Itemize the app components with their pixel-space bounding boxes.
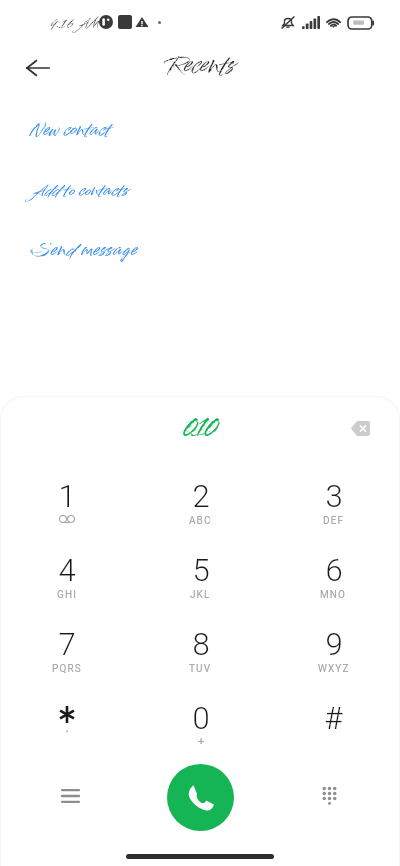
staticText: 8 xyxy=(192,626,210,662)
button[interactable]: Back xyxy=(18,48,58,88)
staticText: 9 xyxy=(325,626,343,662)
button[interactable]: Keypad xyxy=(307,774,351,818)
staticText: 3 xyxy=(325,478,343,514)
staticText: 4 xyxy=(58,552,76,588)
staticText: 6 xyxy=(325,552,343,588)
staticText: # xyxy=(324,700,343,736)
staticText: 1 xyxy=(58,478,76,514)
staticText: Recents xyxy=(166,49,235,85)
button[interactable]: 0 xyxy=(134,700,267,774)
button[interactable]: 1 xyxy=(0,478,134,552)
staticText: 2 xyxy=(192,478,210,514)
staticText: ABC xyxy=(189,515,212,527)
button[interactable]: Add to contacts xyxy=(0,172,400,210)
staticText: MNO xyxy=(320,589,347,601)
button[interactable]: 8 xyxy=(134,626,267,700)
button[interactable]: 2 xyxy=(134,478,267,552)
staticText: 7 xyxy=(58,626,76,662)
staticText: PQRS xyxy=(52,663,82,675)
staticText: DEF xyxy=(323,515,345,527)
staticText: ’ xyxy=(66,728,69,741)
button[interactable]: 5 xyxy=(134,552,267,626)
button[interactable]: New contact xyxy=(0,112,400,150)
button[interactable]: Call log xyxy=(48,774,92,818)
button[interactable]: Call xyxy=(167,764,234,831)
button[interactable]: 6 xyxy=(267,552,400,626)
staticText: 0 xyxy=(192,700,210,736)
staticText: New contact xyxy=(30,118,111,144)
staticText: + xyxy=(198,735,205,748)
staticText: GHI xyxy=(57,589,77,601)
button[interactable]: 3 xyxy=(267,478,400,552)
staticText: WXYZ xyxy=(318,663,350,675)
button[interactable]: 7 xyxy=(0,626,134,700)
button[interactable]: 9 xyxy=(267,626,400,700)
staticText: JKL xyxy=(190,589,211,601)
button[interactable]: 4 xyxy=(0,552,134,626)
staticText: Add to contacts xyxy=(30,179,128,203)
staticText: Send message xyxy=(30,237,138,265)
staticText: 5 xyxy=(192,552,210,588)
button[interactable]: Backspace xyxy=(343,411,377,445)
button[interactable]: Send message xyxy=(0,232,400,270)
staticText: 9:16 AM xyxy=(50,14,100,34)
staticText: TUV xyxy=(189,663,212,675)
staticText: 010 xyxy=(183,407,216,449)
button[interactable]: # xyxy=(267,700,400,774)
button[interactable]: ’ xyxy=(0,700,134,774)
